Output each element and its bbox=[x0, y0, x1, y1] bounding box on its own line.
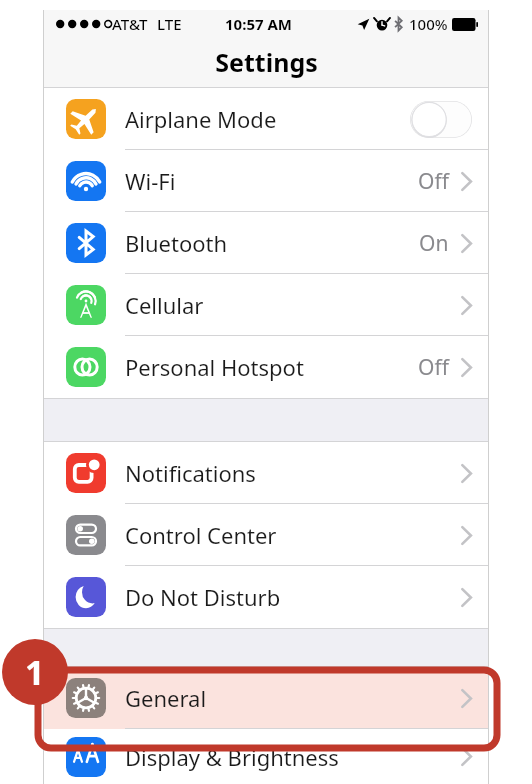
staticText: LTE bbox=[157, 14, 182, 34]
button[interactable]: Personal Hotspot bbox=[44, 336, 488, 398]
staticText: Off bbox=[418, 167, 449, 196]
staticText: Cellular bbox=[125, 290, 204, 320]
button[interactable]: Notifications bbox=[44, 442, 488, 504]
button[interactable]: Airplane Mode toggle bbox=[410, 101, 472, 138]
staticText: Do Not Disturb bbox=[125, 582, 281, 612]
staticText: Off bbox=[418, 353, 449, 382]
button[interactable]: Wi-Fi bbox=[44, 150, 488, 212]
staticText: 10:57 AM bbox=[225, 14, 292, 34]
staticText: Bluetooth bbox=[125, 228, 228, 258]
staticText: Notifications bbox=[125, 458, 256, 488]
staticText: On bbox=[419, 229, 449, 258]
staticText: 100% bbox=[409, 14, 448, 34]
staticText: AT&T bbox=[112, 14, 148, 34]
staticText: Display & Brightness bbox=[125, 742, 339, 772]
button[interactable]: Display & Brightness bbox=[44, 729, 488, 784]
button[interactable]: Do Not Disturb bbox=[44, 566, 488, 628]
staticText: Airplane Mode bbox=[125, 104, 277, 134]
button[interactable]: General bbox=[44, 667, 488, 729]
staticText: Personal Hotspot bbox=[125, 352, 304, 382]
button[interactable]: Airplane Mode bbox=[44, 88, 488, 150]
staticText: 1 bbox=[25, 649, 45, 695]
staticText: Wi-Fi bbox=[125, 166, 176, 196]
button[interactable]: Control Center bbox=[44, 504, 488, 566]
button[interactable]: Cellular bbox=[44, 274, 488, 336]
staticText: Settings bbox=[215, 45, 318, 79]
button[interactable]: Bluetooth bbox=[44, 212, 488, 274]
staticText: General bbox=[125, 683, 207, 713]
staticText: Control Center bbox=[125, 520, 277, 550]
